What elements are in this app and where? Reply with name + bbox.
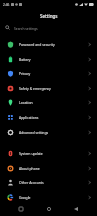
- staticText: Safety & emergency: [19, 86, 51, 91]
- button[interactable]: About phone: [0, 161, 97, 175]
- staticText: System update: [19, 151, 43, 156]
- button[interactable]: Home: [43, 205, 55, 212]
- button[interactable]: Advanced settings: [0, 125, 97, 139]
- staticText: Password and security: [19, 42, 55, 47]
- button[interactable]: Safety & emergency: [0, 81, 97, 95]
- staticText: Advanced settings: [19, 130, 49, 135]
- staticText: Other Accounts: [19, 180, 44, 185]
- staticText: Battery: [19, 57, 31, 62]
- button[interactable]: Google: [0, 190, 97, 205]
- button[interactable]: Other Accounts: [0, 175, 97, 190]
- staticText: 2:46: [3, 3, 10, 7]
- button[interactable]: Battery: [0, 52, 97, 66]
- button[interactable]: Applications: [0, 110, 97, 125]
- button[interactable]: System update: [0, 146, 97, 161]
- staticText: About phone: [19, 166, 40, 171]
- staticText: Search settings: [14, 26, 38, 30]
- staticText: Applications: [19, 115, 39, 120]
- button[interactable]: Back: [70, 205, 82, 212]
- button[interactable]: Search settings: [0, 22, 97, 33]
- staticText: Privacy: [19, 71, 31, 76]
- button[interactable]: Password and security: [0, 37, 97, 52]
- button[interactable]: Privacy: [0, 66, 97, 81]
- button[interactable]: Location: [0, 95, 97, 110]
- staticText: Location: [19, 100, 33, 105]
- button[interactable]: Recents: [15, 205, 27, 212]
- staticText: Settings: [40, 13, 58, 19]
- staticText: Google: [19, 195, 31, 200]
